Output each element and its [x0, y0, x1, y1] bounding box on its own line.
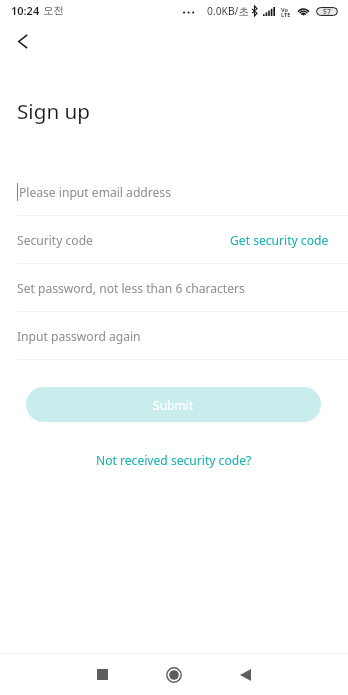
staticText: LTE [281, 11, 291, 19]
staticText: Please input email address [19, 184, 171, 200]
staticText: 57 [323, 7, 331, 16]
button[interactable]: Back [221, 654, 269, 695]
staticText: Sign up [17, 97, 91, 125]
staticText: Input password again [17, 328, 141, 344]
button[interactable]: Home [150, 654, 198, 695]
button[interactable]: Not received security code? [90, 449, 258, 471]
staticText: 0.0KB/초 [207, 4, 249, 18]
staticText: Submit [153, 397, 194, 413]
button[interactable]: Submit [26, 387, 321, 422]
staticText: Vo [281, 6, 289, 14]
button[interactable]: Recent apps [78, 654, 126, 695]
staticText: Not received security code? [96, 452, 252, 468]
button[interactable]: Get security code [230, 232, 329, 248]
staticText: Security code [17, 232, 93, 248]
staticText: 10:24 [11, 3, 40, 18]
staticText: 오전 [43, 4, 64, 17]
staticText: Get security code [230, 232, 329, 248]
button[interactable]: Back [5, 23, 41, 59]
staticText: Set password, not less than 6 characters [17, 280, 245, 296]
